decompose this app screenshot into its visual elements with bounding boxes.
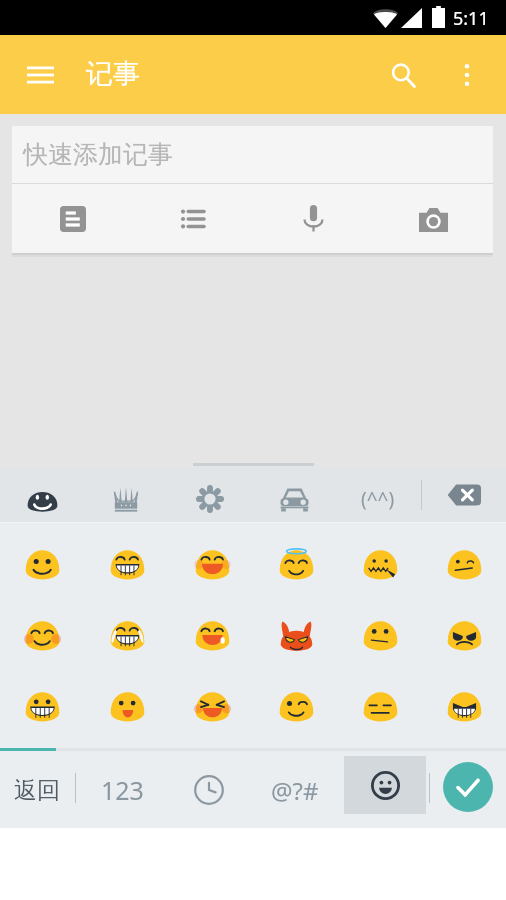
button[interactable]: 返回 bbox=[5, 762, 69, 818]
button[interactable]: Face savouring food bbox=[170, 602, 254, 673]
staticText: 123 bbox=[101, 773, 144, 807]
button[interactable]: 123 bbox=[90, 762, 154, 818]
staticText: (^^) bbox=[361, 486, 395, 512]
button[interactable]: Smileys bbox=[14, 477, 70, 521]
button[interactable]: Checklist note bbox=[133, 184, 253, 253]
button[interactable]: Neutral face bbox=[338, 602, 422, 673]
button[interactable]: Squinting face with tongue bbox=[170, 673, 254, 744]
button[interactable]: More options bbox=[444, 52, 490, 98]
staticText: 返回 bbox=[14, 776, 60, 805]
button[interactable]: Text note bbox=[12, 184, 133, 253]
button[interactable]: Slightly smiling face bbox=[0, 531, 85, 602]
button[interactable]: Face with tongue bbox=[85, 673, 170, 744]
button[interactable]: @?# bbox=[262, 762, 328, 818]
button[interactable]: Expressionless face bbox=[338, 673, 422, 744]
button[interactable]: Winking face bbox=[254, 673, 338, 744]
button[interactable]: Recent bbox=[177, 762, 241, 818]
button[interactable]: Navigation menu bbox=[16, 51, 64, 99]
button[interactable]: Emoji keyboard bbox=[344, 756, 426, 814]
button[interactable]: Smiling face with halo bbox=[254, 531, 338, 602]
button[interactable]: Grinning face bbox=[85, 531, 170, 602]
button[interactable]: Zipper mouth face bbox=[338, 531, 422, 602]
button[interactable]: Grinning face with big eyes bbox=[0, 673, 85, 744]
button[interactable]: Smiling face with smiling eyes bbox=[0, 602, 85, 673]
staticText: 快速添加记事 bbox=[23, 139, 173, 170]
button[interactable]: Smiling face with open mouth bbox=[170, 531, 254, 602]
button[interactable]: Travel bbox=[266, 477, 322, 521]
button[interactable]: Voice note bbox=[253, 184, 373, 253]
button[interactable]: Angry face bbox=[422, 602, 506, 673]
button[interactable]: Thinking face bbox=[422, 531, 506, 602]
staticText: @?# bbox=[271, 774, 319, 807]
button[interactable]: Photo note bbox=[373, 184, 493, 253]
staticText: 5:11 bbox=[453, 6, 489, 31]
button[interactable]: Backspace bbox=[442, 479, 486, 511]
button[interactable]: Face with tears of joy bbox=[85, 602, 170, 673]
staticText: 记事 bbox=[86, 57, 140, 91]
button[interactable]: Grimacing face bbox=[422, 673, 506, 744]
button[interactable]: Confirm bbox=[443, 762, 493, 812]
button[interactable]: Search bbox=[380, 52, 426, 98]
button[interactable]: Gestures bbox=[98, 477, 154, 521]
button[interactable]: Smiling face with horns bbox=[254, 602, 338, 673]
button[interactable]: Kaomoji bbox=[350, 477, 406, 521]
button[interactable]: Nature bbox=[182, 477, 238, 521]
